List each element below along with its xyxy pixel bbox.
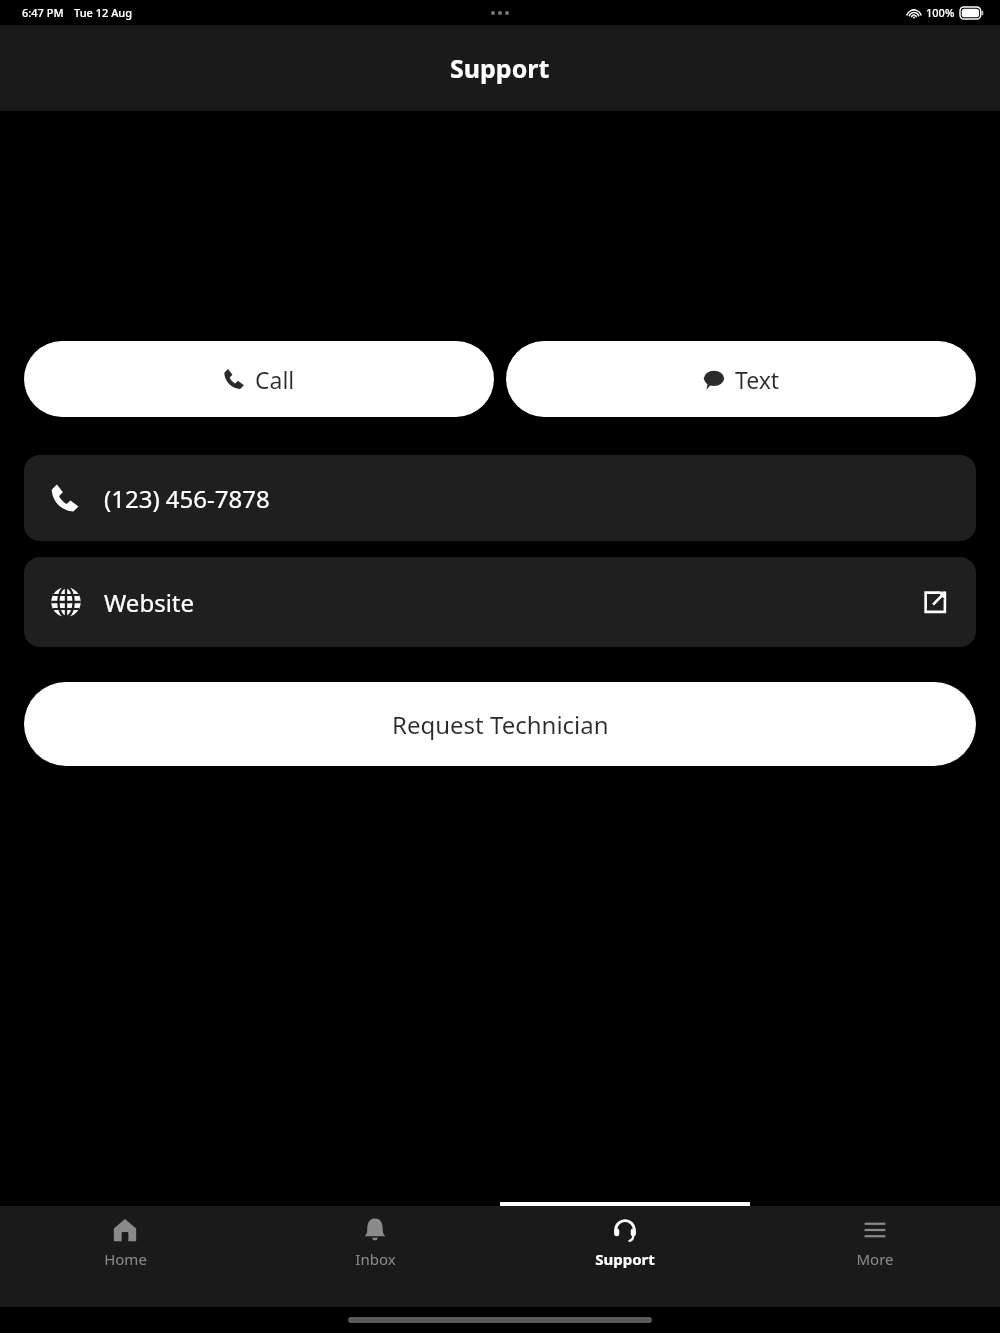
button[interactable]: More	[750, 1206, 1000, 1269]
staticText: Support	[595, 1249, 655, 1269]
button[interactable]: Call	[24, 341, 494, 417]
staticText: Text	[735, 364, 780, 395]
staticText: 100%	[926, 5, 955, 20]
button[interactable]: Inbox	[250, 1206, 500, 1269]
staticText: Call	[255, 364, 295, 395]
button[interactable]: Home	[0, 1206, 250, 1269]
staticText: Website	[104, 586, 195, 619]
staticText: Home	[104, 1249, 147, 1269]
button[interactable]: Website	[24, 557, 976, 647]
other: Open website in browser	[922, 589, 948, 615]
button[interactable]: Support	[500, 1206, 750, 1269]
staticText: Inbox	[355, 1249, 396, 1269]
staticText: More	[856, 1249, 894, 1269]
staticText: 6:47 PM	[22, 5, 64, 20]
button[interactable]: Request Technician	[24, 682, 976, 766]
staticText: Support	[450, 51, 550, 85]
button[interactable]: Text	[506, 341, 976, 417]
staticText: Request Technician	[392, 708, 609, 741]
button[interactable]: (123) 456-7878	[24, 455, 976, 541]
staticText: (123) 456-7878	[104, 482, 270, 515]
staticText: Tue 12 Aug	[74, 5, 133, 20]
